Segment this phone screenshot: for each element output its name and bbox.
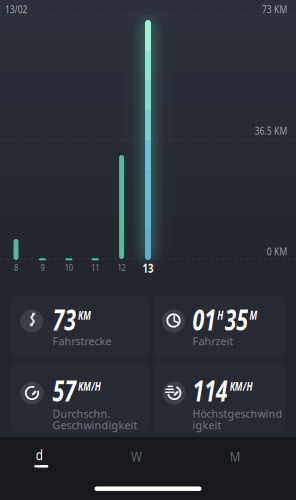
button[interactable]: 10 — [57, 259, 81, 275]
staticText: 9 — [40, 261, 45, 274]
staticText: W — [129, 446, 143, 466]
staticText: KM — [87, 307, 105, 323]
staticText: 114 — [192, 370, 240, 409]
staticText: 0 KM — [261, 244, 287, 258]
staticText: 13/02 — [5, 2, 33, 16]
staticText: KM/H — [243, 378, 274, 394]
button[interactable]: 9 — [30, 259, 54, 275]
staticText: 10 — [64, 261, 74, 274]
staticText: 36.5 KM — [246, 123, 287, 138]
button[interactable]: 8 — [4, 259, 28, 275]
button[interactable]: 12 — [110, 259, 134, 275]
staticText: d — [35, 445, 44, 464]
staticText: 8 — [13, 261, 18, 274]
staticText: Höchstgeschwind — [192, 407, 282, 421]
staticText: Durchschn. — [52, 407, 110, 421]
button[interactable]: d — [9, 437, 69, 481]
button[interactable]: M — [205, 434, 265, 478]
staticText: KM/H — [87, 378, 118, 394]
staticText: 35 — [236, 299, 268, 338]
staticText: 73 KM — [255, 2, 287, 16]
staticText: igkeit — [192, 418, 221, 432]
staticText: Geschwindigkeit — [52, 418, 137, 432]
staticText: 73 — [52, 299, 84, 338]
staticText: 01 — [192, 299, 224, 338]
staticText: 57 — [52, 370, 84, 409]
staticText: 13 — [141, 260, 155, 276]
staticText: H — [226, 307, 234, 323]
staticText: Fahrzeit — [192, 334, 233, 348]
staticText: 11 — [90, 261, 100, 274]
staticText: 12 — [117, 261, 127, 274]
staticText: M — [228, 446, 241, 466]
button[interactable]: W — [106, 434, 166, 478]
staticText: Fahrstrecke — [52, 334, 111, 348]
button[interactable]: 11 — [83, 259, 107, 275]
button[interactable]: 13 — [136, 260, 160, 276]
